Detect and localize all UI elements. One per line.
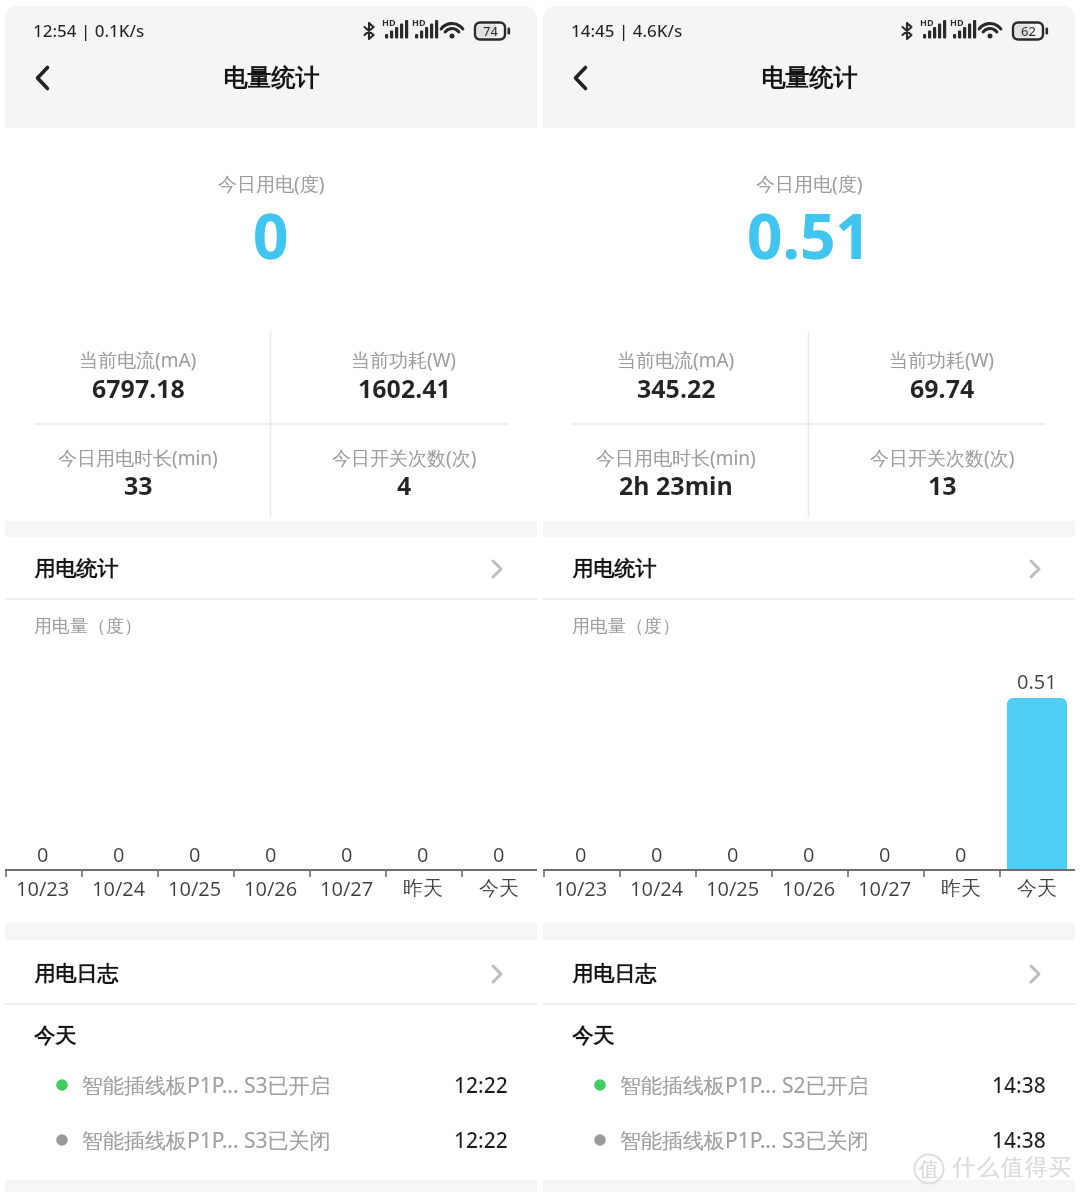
staticText: 2h 23min bbox=[619, 468, 733, 502]
staticText: 10/23 bbox=[16, 875, 70, 902]
staticText: 1602.41 bbox=[358, 371, 451, 405]
staticText: 智能插线板P1P... S3已关闭 bbox=[620, 1126, 869, 1155]
staticText: 今日用电时长(min) bbox=[596, 445, 756, 471]
staticText: 10/24 bbox=[92, 875, 146, 902]
staticText: 14:38 bbox=[992, 1126, 1046, 1155]
staticText: 0 bbox=[113, 841, 125, 868]
button[interactable] bbox=[557, 56, 603, 100]
staticText: 6797.18 bbox=[92, 371, 185, 405]
staticText: 0 bbox=[575, 841, 587, 868]
staticText: 10/25 bbox=[706, 875, 760, 902]
staticText: 33 bbox=[124, 468, 153, 502]
staticText: 用电量（度） bbox=[34, 615, 142, 638]
staticText: HD bbox=[920, 16, 934, 28]
staticText: 13 bbox=[928, 468, 957, 502]
button[interactable] bbox=[5, 943, 537, 1003]
staticText: 昨天 bbox=[941, 876, 981, 901]
staticText: 345.22 bbox=[637, 371, 716, 405]
staticText: 69.74 bbox=[910, 371, 975, 405]
staticText: 昨天 bbox=[403, 876, 443, 901]
staticText: 4 bbox=[397, 468, 412, 502]
staticText: HD bbox=[412, 16, 426, 28]
staticText: 0 bbox=[341, 841, 353, 868]
staticText: 0 bbox=[803, 841, 815, 868]
staticText: 74 bbox=[483, 22, 498, 40]
button[interactable] bbox=[543, 1113, 1075, 1167]
staticText: 值 bbox=[919, 1157, 939, 1182]
staticText: 62 bbox=[1021, 22, 1036, 40]
staticText: 当前功耗(W) bbox=[889, 347, 995, 373]
staticText: 今日用电(度) bbox=[756, 171, 863, 197]
staticText: 10/27 bbox=[858, 875, 912, 902]
staticText: 0 bbox=[955, 841, 967, 868]
staticText: 0 bbox=[651, 841, 663, 868]
staticText: 当前电流(mA) bbox=[617, 347, 735, 373]
staticText: 今天 bbox=[479, 876, 519, 901]
staticText: 智能插线板P1P... S3已关闭 bbox=[82, 1126, 331, 1155]
staticText: 今天 bbox=[34, 1023, 76, 1049]
staticText: 智能插线板P1P... S3已开启 bbox=[82, 1071, 331, 1100]
button[interactable] bbox=[5, 1113, 537, 1167]
staticText: 0 bbox=[189, 841, 201, 868]
staticText: 用电统计 bbox=[572, 556, 656, 582]
staticText: 0 bbox=[253, 193, 289, 277]
staticText: 0 bbox=[417, 841, 429, 868]
button[interactable] bbox=[5, 541, 537, 598]
staticText: 今天 bbox=[572, 1023, 614, 1049]
staticText: 当前电流(mA) bbox=[79, 347, 197, 373]
staticText: 10/27 bbox=[320, 875, 374, 902]
staticText: 今日用电时长(min) bbox=[58, 445, 218, 471]
staticText: 0 bbox=[879, 841, 891, 868]
staticText: 0 bbox=[37, 841, 49, 868]
staticText: 用电日志 bbox=[572, 961, 656, 987]
staticText: 今日开关次数(次) bbox=[332, 445, 477, 471]
staticText: 今天 bbox=[1017, 876, 1057, 901]
staticText: HD bbox=[382, 16, 396, 28]
staticText: 10/26 bbox=[782, 875, 836, 902]
staticText: 10/25 bbox=[168, 875, 222, 902]
staticText: 14:45 | 4.6K/s bbox=[571, 19, 683, 42]
staticText: 当前功耗(W) bbox=[351, 347, 457, 373]
staticText: 10/24 bbox=[630, 875, 684, 902]
staticText: 0 bbox=[727, 841, 739, 868]
button[interactable] bbox=[19, 56, 65, 100]
button[interactable] bbox=[543, 1058, 1075, 1112]
staticText: 0.51 bbox=[747, 193, 871, 277]
staticText: 电量统计 bbox=[761, 63, 857, 93]
staticText: 电量统计 bbox=[223, 63, 319, 93]
staticText: 智能插线板P1P... S2已开启 bbox=[620, 1071, 869, 1100]
button[interactable] bbox=[5, 1058, 537, 1112]
staticText: 用电日志 bbox=[34, 961, 118, 987]
staticText: 12:22 bbox=[454, 1126, 508, 1155]
staticText: 什么值得买 bbox=[952, 1153, 1072, 1182]
staticText: 今日用电(度) bbox=[218, 171, 325, 197]
staticText: 12:54 | 0.1K/s bbox=[33, 19, 145, 42]
staticText: 10/23 bbox=[554, 875, 608, 902]
staticText: 12:22 bbox=[454, 1071, 508, 1100]
staticText: 0 bbox=[493, 841, 505, 868]
staticText: 用电统计 bbox=[34, 556, 118, 582]
staticText: 14:38 bbox=[992, 1071, 1046, 1100]
staticText: 今日开关次数(次) bbox=[870, 445, 1015, 471]
staticText: 0 bbox=[265, 841, 277, 868]
staticText: HD bbox=[950, 16, 964, 28]
button[interactable] bbox=[543, 943, 1075, 1003]
staticText: 用电量（度） bbox=[572, 615, 680, 638]
staticText: 10/26 bbox=[244, 875, 298, 902]
staticText: 0.51 bbox=[1017, 668, 1057, 695]
button[interactable] bbox=[543, 541, 1075, 598]
